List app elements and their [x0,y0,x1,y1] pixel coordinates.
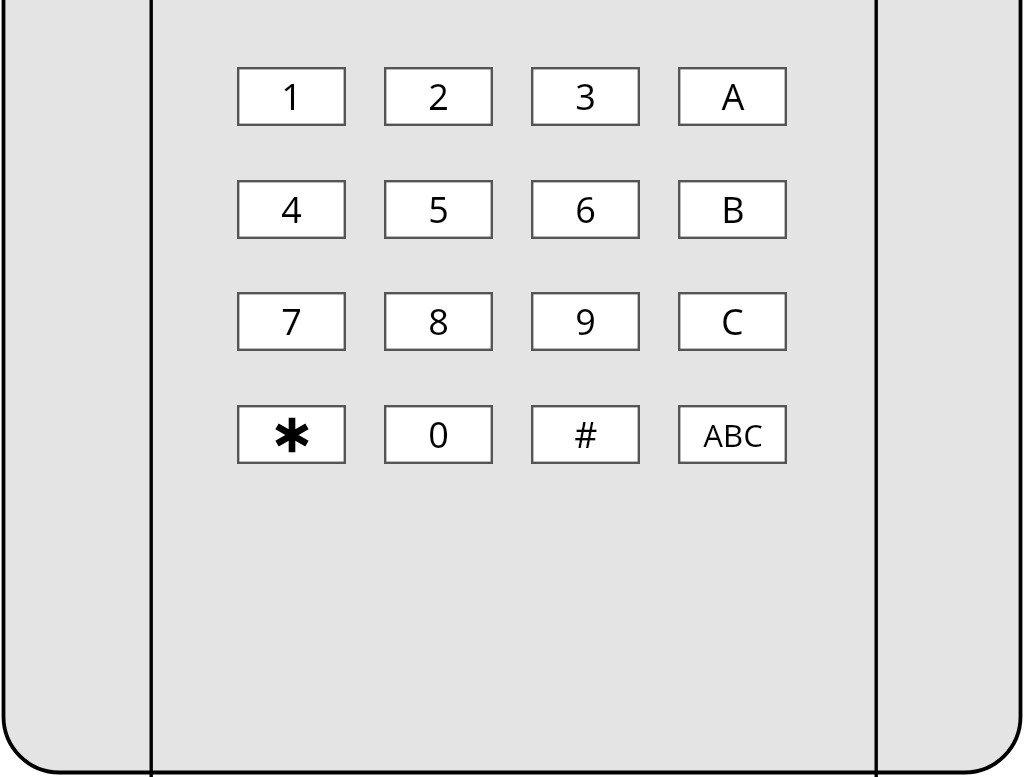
staticText: 6 [575,185,596,234]
button[interactable]: Key 3 [531,67,640,126]
button[interactable]: ABC key [678,405,787,464]
button[interactable]: Star key [237,405,346,464]
button[interactable]: Key C [678,292,787,351]
staticText: 9 [575,297,596,346]
button[interactable]: Key 4 [237,180,346,239]
button[interactable]: Key 0 [384,405,493,464]
button[interactable]: Key A [678,67,787,126]
button[interactable]: Key 8 [384,292,493,351]
button[interactable]: Key 2 [384,67,493,126]
staticText: ABC [703,414,763,456]
button[interactable]: Key 6 [531,180,640,239]
staticText: 7 [281,297,302,346]
button[interactable]: Pound key [531,405,640,464]
staticText: 0 [428,410,449,459]
staticText: C [721,297,744,346]
button[interactable]: Key 9 [531,292,640,351]
staticText: 3 [575,72,596,121]
button[interactable]: Key 5 [384,180,493,239]
staticText: 5 [428,185,449,234]
staticText: 2 [428,72,449,121]
button[interactable]: Key 7 [237,292,346,351]
staticText: # [574,410,598,459]
staticText: 4 [281,185,302,234]
staticText: 8 [428,297,449,346]
button[interactable]: Key 1 [237,67,346,126]
button[interactable]: Key B [678,180,787,239]
staticText: A [721,72,745,121]
staticText: B [721,185,745,234]
staticText: 1 [281,72,302,121]
